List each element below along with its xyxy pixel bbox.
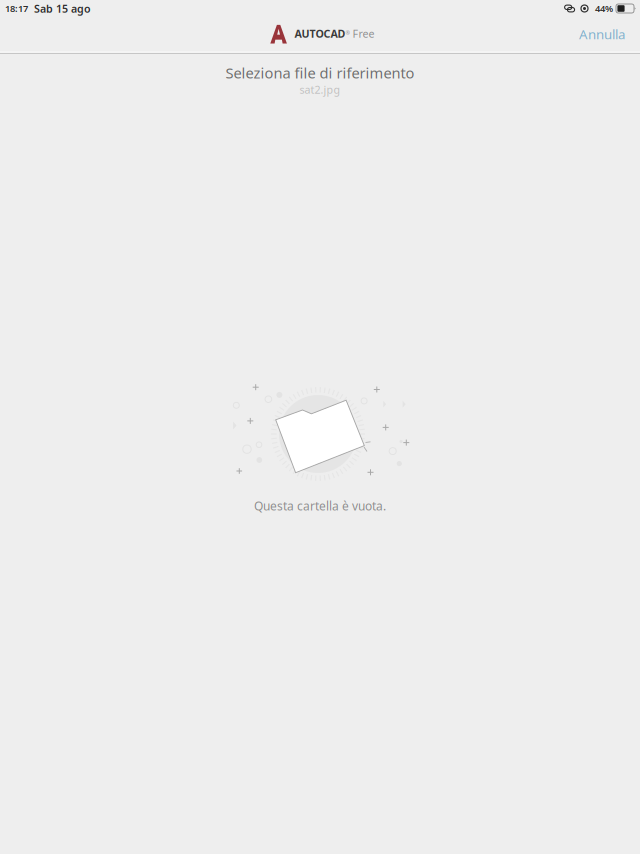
staticText: AUTOCAD bbox=[294, 26, 345, 41]
staticText: sat2.jpg bbox=[299, 82, 340, 97]
staticText: Annulla bbox=[579, 25, 625, 43]
staticText: Free bbox=[349, 26, 374, 41]
staticText: Questa cartella è vuota. bbox=[254, 498, 386, 514]
staticText: ® bbox=[345, 29, 349, 37]
button[interactable]: Annulla bbox=[564, 17, 640, 51]
staticText: 18:17 bbox=[5, 2, 28, 15]
staticText: 44% bbox=[595, 2, 613, 15]
staticText: Seleziona file di riferimento bbox=[225, 63, 414, 82]
staticText: Sab 15 ago bbox=[34, 1, 91, 16]
